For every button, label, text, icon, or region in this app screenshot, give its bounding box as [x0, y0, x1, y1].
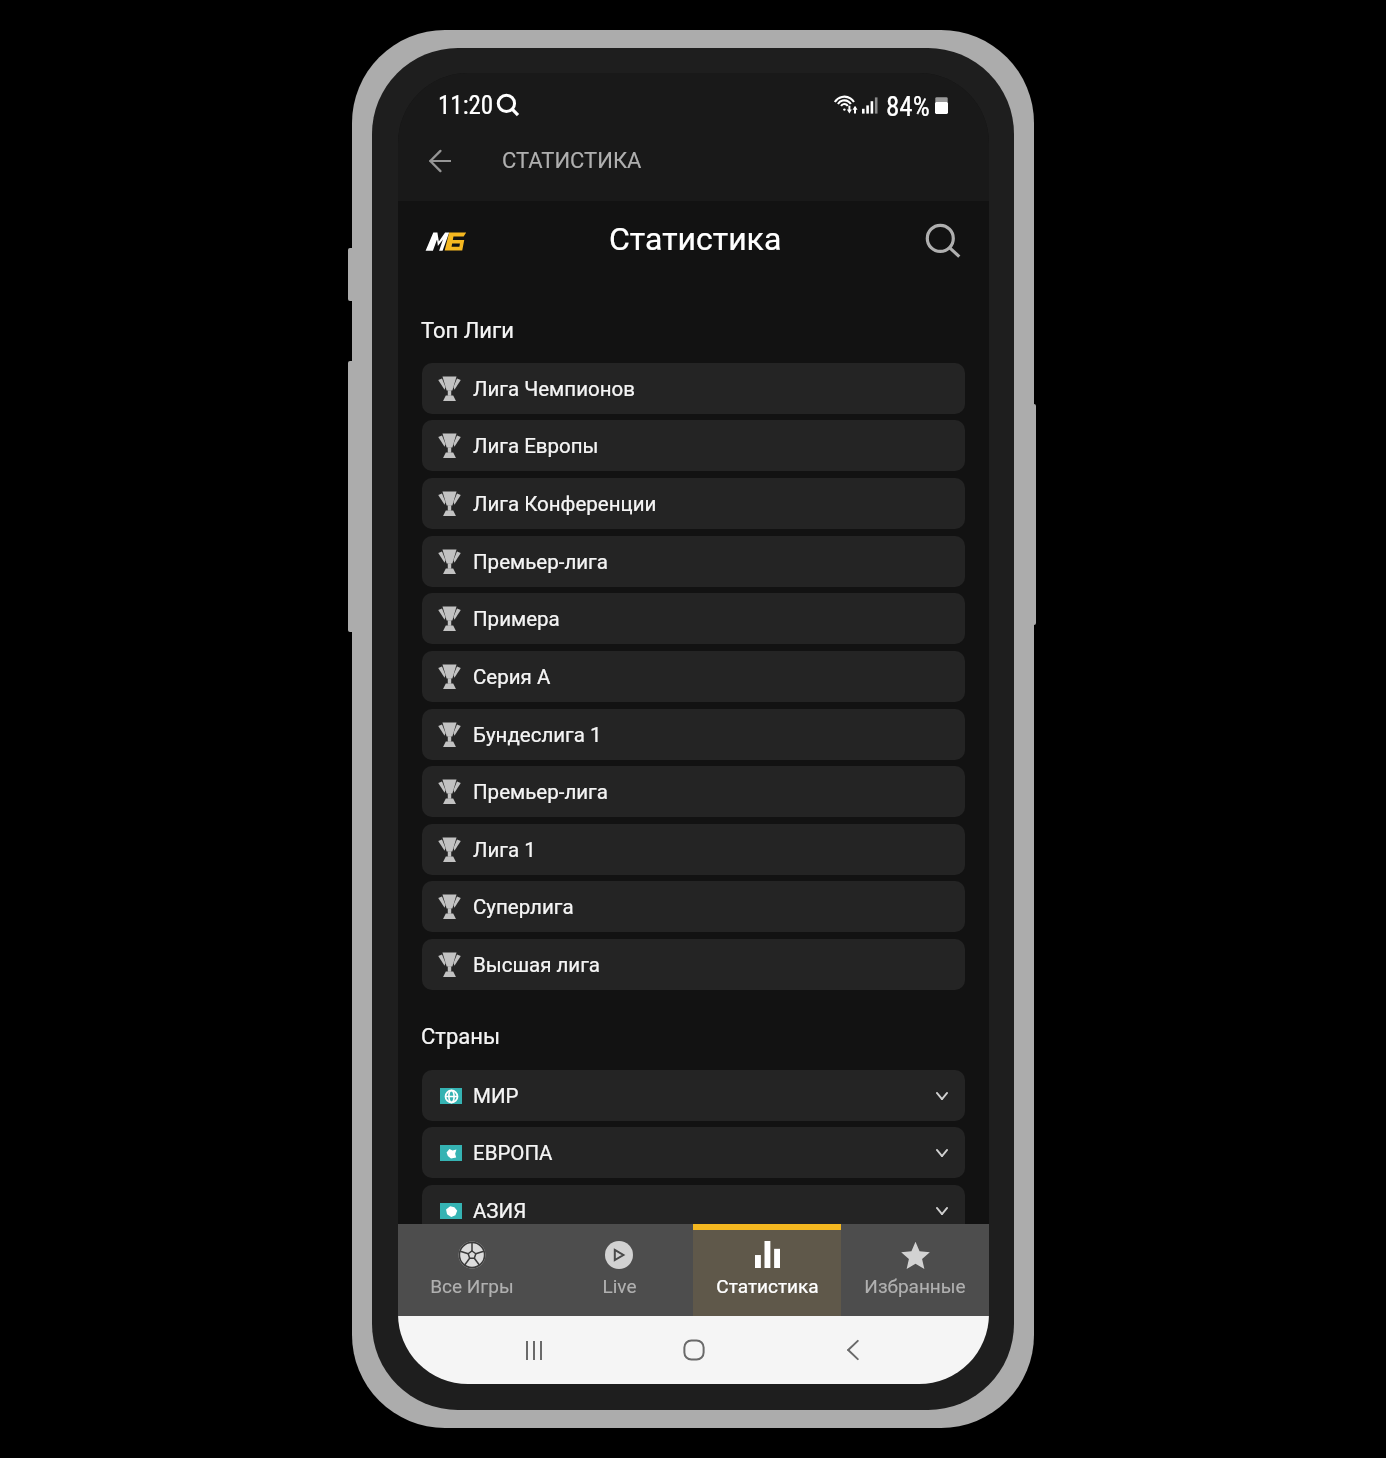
staticText: Премьер-лига [473, 550, 608, 574]
button[interactable]: Лига Конференции [422, 478, 965, 529]
button[interactable]: МИР [422, 1070, 965, 1121]
staticText: Суперлига [473, 895, 574, 919]
button[interactable]: Статистика [693, 1224, 841, 1316]
staticText: 84% [886, 91, 930, 123]
staticText: Лига Чемпионов [473, 377, 635, 401]
staticText: МИР [473, 1084, 519, 1108]
button[interactable]: Лига Чемпионов [422, 363, 965, 414]
button[interactable]: Серия А [422, 651, 965, 702]
button[interactable]: Live [545, 1224, 693, 1316]
staticText: Премьер-лига [473, 780, 608, 804]
button[interactable]: Back [423, 144, 457, 178]
button[interactable]: Search [921, 219, 963, 261]
button[interactable]: Высшая лига [422, 939, 965, 990]
staticText: Серия А [473, 665, 551, 689]
button[interactable]: Примера [422, 593, 965, 644]
button[interactable]: Лига 1 [422, 824, 965, 875]
button[interactable]: Суперлига [422, 881, 965, 932]
staticText: Статистика [716, 1275, 819, 1297]
staticText: Лига 1 [473, 838, 536, 862]
button[interactable]: Recent apps [511, 1327, 557, 1373]
staticText: Примера [473, 607, 560, 631]
staticText: Избранные [864, 1275, 966, 1297]
button[interactable]: Избранные [841, 1224, 989, 1316]
button[interactable]: Search the web [494, 91, 520, 117]
staticText: Лига Конференции [473, 492, 657, 516]
button[interactable]: ЕВРОПА [422, 1127, 965, 1178]
staticText: ЕВРОПА [473, 1141, 553, 1165]
staticText: Статистика [609, 220, 782, 258]
staticText: Лига Европы [473, 434, 599, 458]
staticText: Страны [421, 1024, 500, 1050]
staticText: Live [602, 1275, 637, 1297]
staticText: Все Игры [430, 1275, 514, 1297]
staticText: Топ Лиги [421, 318, 514, 344]
staticText: 11:20 [438, 91, 494, 120]
button[interactable]: Лига Европы [422, 420, 965, 471]
staticText: Бундеслига 1 [473, 723, 602, 747]
button[interactable]: Бундеслига 1 [422, 709, 965, 760]
button[interactable]: Премьер-лига [422, 766, 965, 817]
staticText: Высшая лига [473, 953, 600, 977]
staticText: АЗИЯ [473, 1199, 527, 1223]
button[interactable]: Премьер-лига [422, 536, 965, 587]
button[interactable]: Все Игры [398, 1224, 545, 1316]
staticText: СТАТИСТИКА [502, 148, 642, 174]
button[interactable]: MarathonBet home [421, 226, 467, 256]
button[interactable]: Back [830, 1327, 876, 1373]
button[interactable]: Home [671, 1327, 717, 1373]
button[interactable]: АЗИЯ [422, 1185, 965, 1236]
